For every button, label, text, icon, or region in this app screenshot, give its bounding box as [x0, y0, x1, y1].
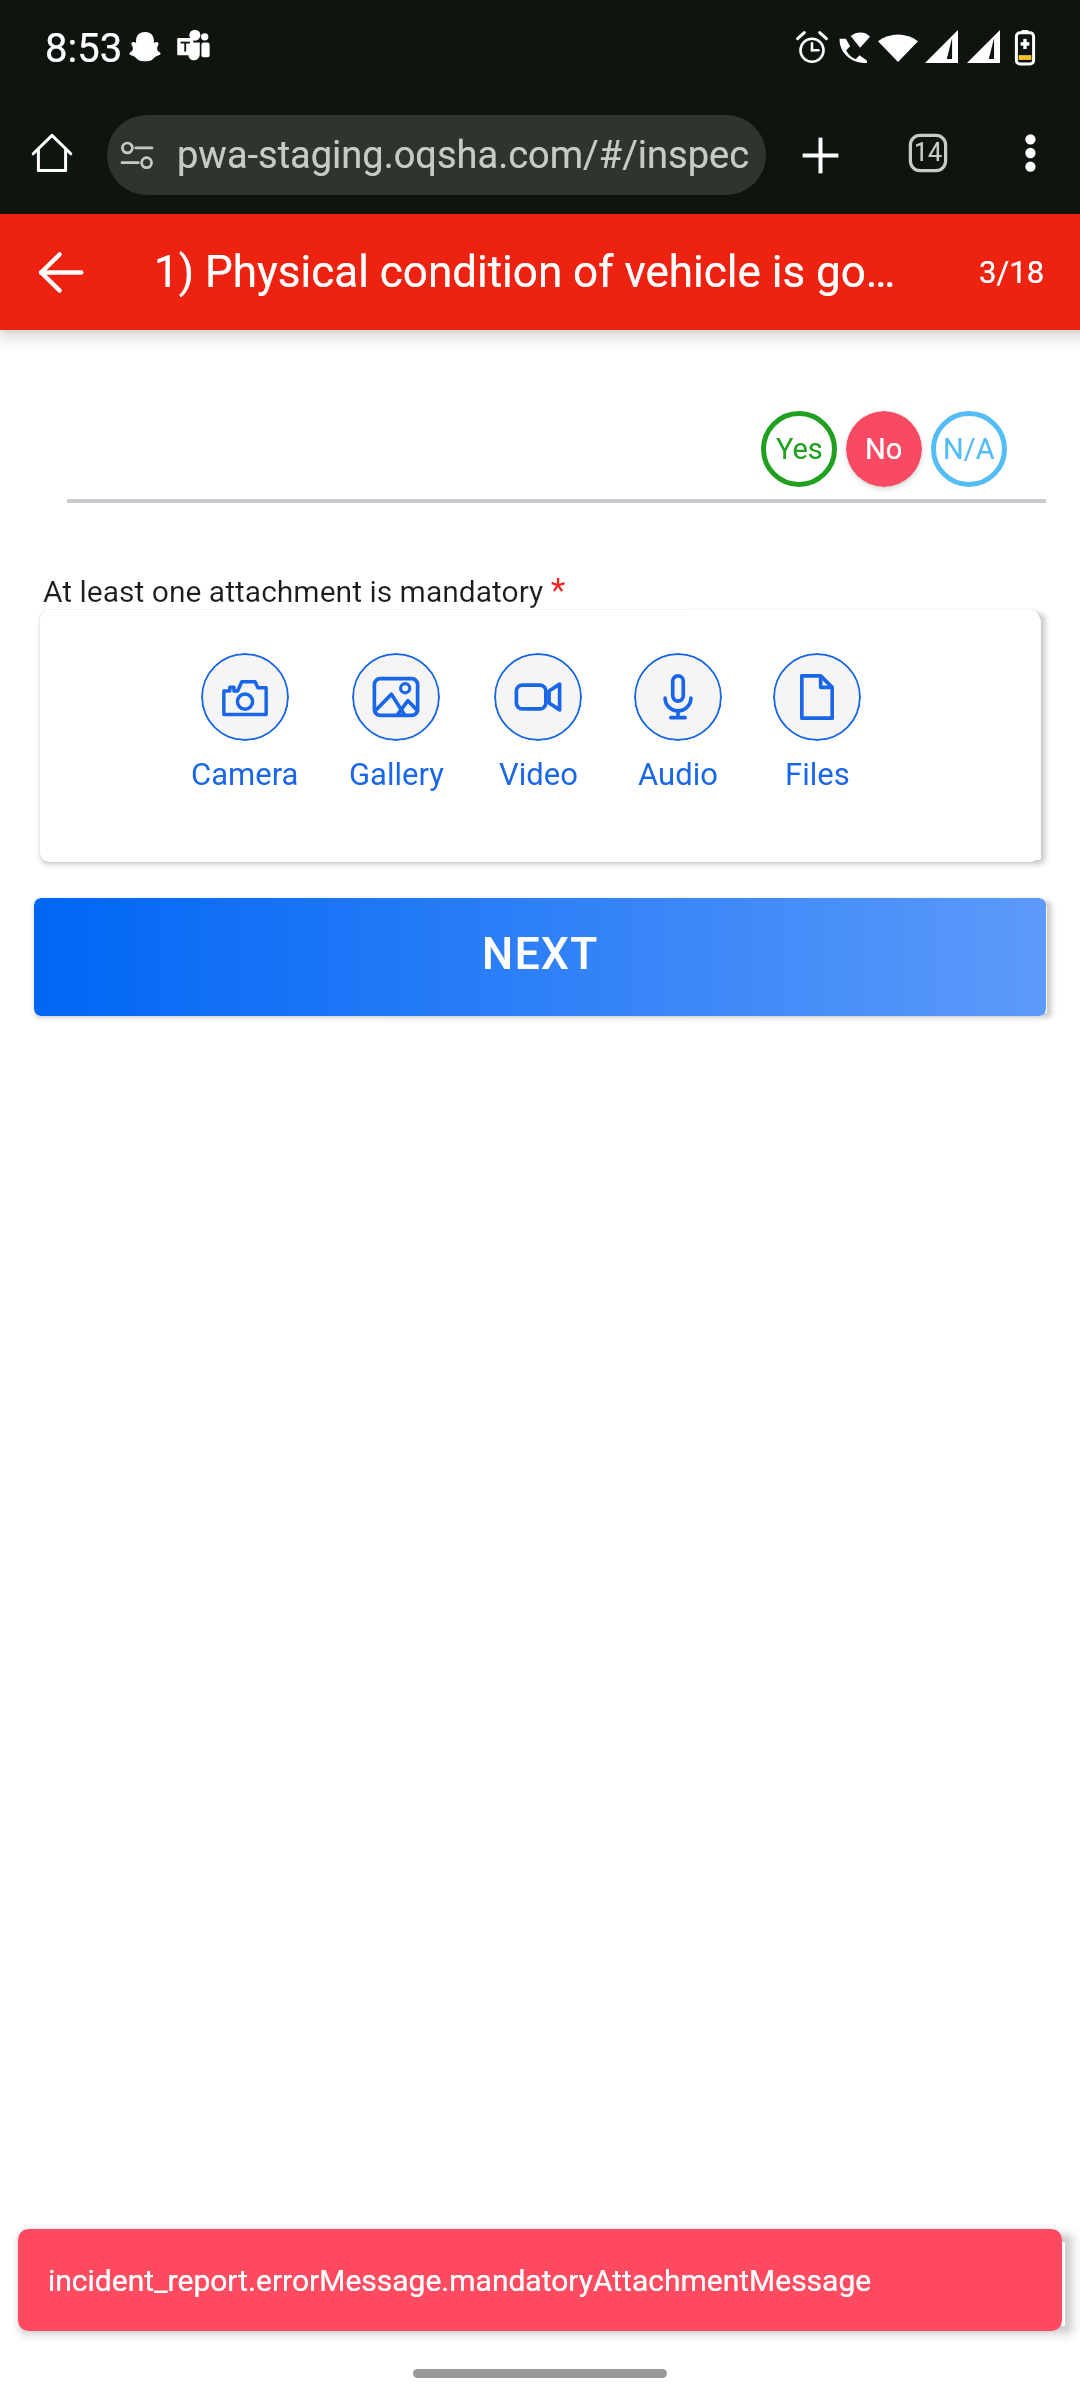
staticText: incident_report.errorMessage.mandatoryAt… [48, 2263, 872, 2298]
staticText: NEXT [482, 928, 599, 980]
staticText: 1) Physical condition of vehicle is go… [154, 246, 896, 298]
staticText: Yes [776, 432, 823, 466]
staticText: 3/18 [979, 254, 1045, 290]
button[interactable]: N/A [931, 411, 1007, 487]
staticText: No [865, 432, 903, 466]
button[interactable]: New tab [797, 132, 844, 179]
button[interactable]: More options [1016, 134, 1054, 172]
button[interactable]: No [846, 411, 922, 487]
button[interactable]: incident_report.errorMessage.mandatoryAt… [18, 2229, 1062, 2331]
staticText: Video [499, 756, 578, 792]
button[interactable]: NEXT [34, 898, 1046, 1016]
button[interactable]: Audio [608, 653, 748, 792]
button[interactable]: Back [38, 250, 83, 295]
staticText: Camera [191, 756, 299, 792]
button[interactable]: Gallery [326, 653, 466, 792]
button[interactable]: Yes [761, 411, 837, 487]
staticText: pwa-staging.oqsha.com/#/inspec [177, 133, 750, 178]
button[interactable]: Home [32, 133, 72, 173]
button[interactable]: Tabs [907, 132, 949, 174]
staticText: 14 [914, 138, 943, 167]
staticText: Gallery [349, 756, 444, 792]
staticText: 8:53 [45, 25, 123, 72]
staticText: N/A [943, 432, 995, 466]
staticText: Audio [638, 756, 718, 792]
button[interactable]: Video [468, 653, 608, 792]
button[interactable]: Files [747, 653, 887, 792]
staticText: Files [785, 756, 850, 792]
staticText: At least one attachment is mandatory * [43, 570, 566, 610]
button[interactable]: Camera [175, 653, 315, 792]
button[interactable]: pwa-staging.oqsha.com/#/inspec [107, 115, 766, 195]
